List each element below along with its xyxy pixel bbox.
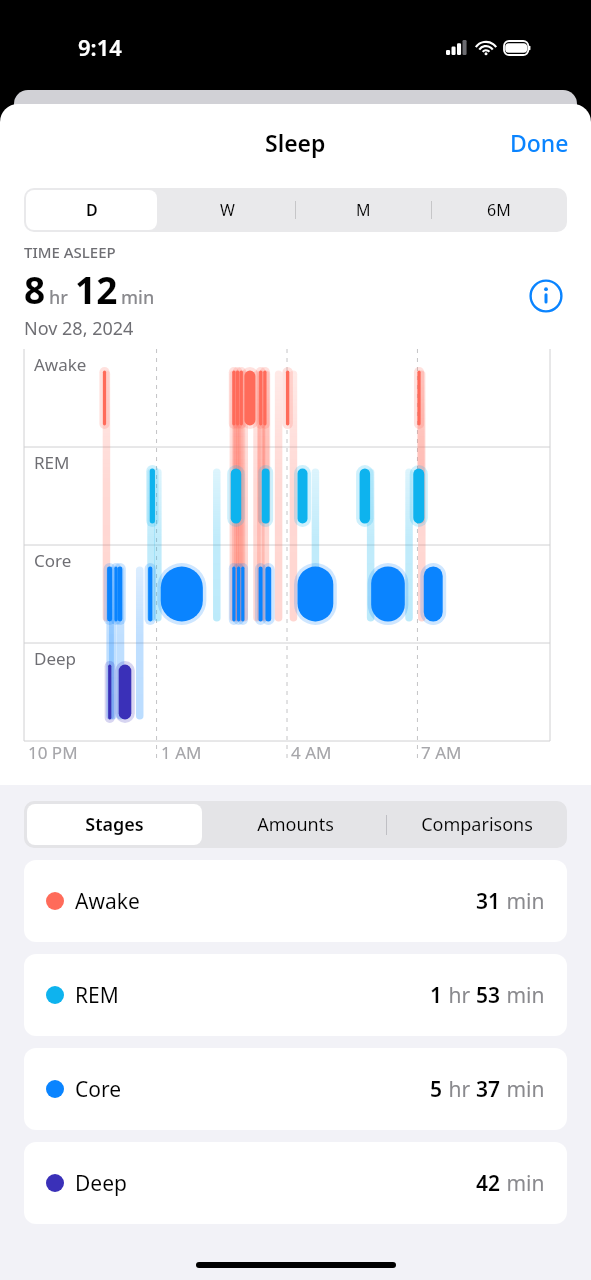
staticText: min <box>121 285 155 310</box>
staticText: 7 AM <box>421 741 462 764</box>
staticText: 8 <box>24 264 46 314</box>
staticText: 53 <box>476 981 501 1010</box>
staticText: hr <box>443 1075 476 1104</box>
staticText: 1 <box>430 981 443 1010</box>
button[interactable]: M <box>297 190 429 230</box>
staticText: 4 AM <box>291 741 332 764</box>
button[interactable]: Done <box>488 117 591 168</box>
staticText: min <box>501 1075 545 1104</box>
staticText: 10 PM <box>28 741 78 764</box>
button[interactable]: Awake <box>24 860 567 942</box>
staticText: 1 AM <box>161 741 202 764</box>
staticText: 37 <box>476 1075 501 1104</box>
staticText: M <box>356 199 371 221</box>
staticText: 42 <box>476 1169 501 1198</box>
staticText: Core <box>75 1075 122 1104</box>
staticText: TIME ASLEEP <box>24 242 116 262</box>
staticText: 12 <box>75 264 118 314</box>
staticText: min <box>501 887 545 916</box>
staticText: Core <box>34 549 72 572</box>
staticText: Deep <box>34 647 77 670</box>
button[interactable]: W <box>161 190 293 230</box>
button[interactable]: 6M <box>433 190 565 230</box>
staticText: Comparisons <box>421 812 533 837</box>
staticText: Done <box>510 127 569 158</box>
staticText: 9:14 <box>78 32 122 62</box>
staticText: Amounts <box>257 812 334 837</box>
staticText: Awake <box>75 887 140 916</box>
staticText: Awake <box>34 353 87 376</box>
button[interactable]: Core <box>24 1048 567 1130</box>
button[interactable]: D <box>26 190 157 230</box>
staticText: 6M <box>487 199 511 221</box>
staticText: min <box>501 981 545 1010</box>
staticText: Nov 28, 2024 <box>24 316 134 341</box>
button[interactable]: Amounts <box>208 804 383 845</box>
staticText: REM <box>75 981 119 1010</box>
staticText: 31 <box>476 887 501 916</box>
staticText: D <box>86 199 98 221</box>
button[interactable]: Comparisons <box>389 804 564 845</box>
staticText: Stages <box>85 812 144 837</box>
staticText: 5 <box>430 1075 443 1104</box>
button[interactable]: Deep <box>24 1142 567 1224</box>
button[interactable]: Stages <box>27 804 202 845</box>
staticText: Deep <box>75 1169 127 1198</box>
button[interactable]: REM <box>24 954 567 1036</box>
staticText: Sleep <box>265 127 326 158</box>
staticText: REM <box>34 451 70 474</box>
staticText: min <box>501 1169 545 1198</box>
staticText: W <box>220 199 235 221</box>
staticText: hr <box>443 981 476 1010</box>
button[interactable]: About sleep data <box>525 275 567 317</box>
staticText: hr <box>49 285 68 310</box>
